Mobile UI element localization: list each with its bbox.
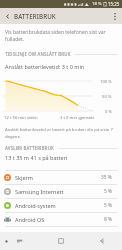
button[interactable]: Android OS (0, 213, 122, 226)
staticText: BATTERIBRUK (14, 12, 56, 20)
staticText: AVSLØR BATTERIBRUK (5, 145, 55, 151)
staticText: 5 % (104, 188, 112, 195)
button[interactable]: Back (0, 8, 14, 24)
staticText: 3 t 0 min gjenstår (60, 115, 95, 121)
staticText: 8 % (104, 216, 112, 223)
staticText: Anslått batterilevetid: 3 t 0 min (5, 63, 85, 70)
button[interactable]: Samsung Internett (0, 185, 122, 198)
staticText: Android-system (15, 202, 56, 209)
staticText: 5 % (104, 202, 112, 209)
staticText: Anslått batterilevetid er basert på bruk… (5, 127, 113, 139)
staticText: Skjerm (15, 174, 33, 181)
staticText: 13 t 35 m 41 s på batteri (5, 154, 68, 161)
staticText: 35 % (101, 174, 112, 181)
button[interactable]: Recent apps (0, 232, 40, 250)
button[interactable]: More options (108, 8, 122, 24)
staticText: Samsung Internett (15, 188, 64, 195)
staticText: 50 % (102, 94, 112, 100)
button[interactable]: Back (81, 232, 122, 250)
button[interactable]: Android-system (0, 199, 122, 212)
staticText: 15:25 (108, 1, 120, 7)
button[interactable]: Home (40, 232, 81, 250)
staticText: Vis batteribrukdata siden telefonen sist… (5, 29, 106, 43)
staticText: TIDSLINJE OM ANSLÅTT BRUK (5, 51, 71, 57)
staticText: 12 t 56 min siden (4, 115, 38, 121)
staticText: 18 % (92, 1, 102, 7)
staticText: Android OS (15, 216, 45, 223)
staticText: 0 % (105, 109, 112, 115)
button[interactable]: Skjerm (0, 171, 122, 184)
staticText: 100 % (100, 79, 112, 85)
